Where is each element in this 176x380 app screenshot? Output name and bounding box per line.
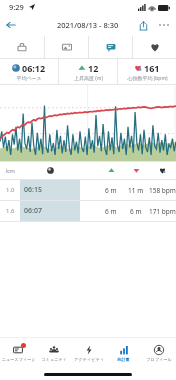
button[interactable]: プロフィール	[141, 338, 176, 368]
button[interactable]: アクティビティ	[71, 338, 106, 368]
staticText: 171 bpm	[149, 207, 176, 216]
staticText: 6 m	[105, 186, 117, 195]
button[interactable]: 161	[118, 59, 176, 84]
staticText: コミュニティ	[41, 357, 67, 362]
button[interactable]: Activity type	[0, 36, 44, 58]
staticText: ニュースフィード	[1, 357, 36, 362]
staticText: 心拍数平均 (bpm)	[127, 75, 168, 82]
staticText: 2021/08/13 - 8:30	[57, 20, 119, 30]
staticText: 統計量	[117, 357, 130, 362]
staticText: 1.6	[6, 207, 15, 215]
button[interactable]: 12	[59, 59, 117, 84]
staticText: 06:07	[24, 206, 42, 216]
staticText: km	[6, 167, 15, 175]
button[interactable]: More options	[154, 14, 174, 36]
staticText: 上昇高度 (m)	[74, 75, 103, 82]
button[interactable]: Back	[0, 14, 22, 36]
staticText: 12	[88, 62, 99, 74]
button[interactable]	[0, 85, 176, 161]
button[interactable]: 1.0	[0, 180, 176, 200]
staticText: 06:12	[22, 62, 46, 74]
button[interactable]: 06:12	[0, 59, 58, 84]
button[interactable]: Like	[133, 36, 176, 58]
button[interactable]: 統計量	[106, 338, 141, 368]
staticText: 1.0	[6, 186, 15, 194]
staticText: 6 m	[105, 207, 117, 216]
staticText: 11 m	[128, 186, 144, 195]
button[interactable]: Comments	[89, 36, 132, 58]
staticText: 161	[144, 62, 160, 74]
staticText: 平均ペース	[16, 75, 42, 81]
staticText: 158 bpm	[149, 186, 176, 195]
staticText: アクティビティ	[74, 357, 104, 362]
staticText: プロフィール	[146, 357, 172, 362]
staticText: 6 m	[130, 207, 142, 216]
button[interactable]: 1.6	[0, 201, 176, 221]
staticText: 9:29	[9, 2, 24, 12]
button[interactable]: コミュニティ	[36, 338, 71, 368]
staticText: 06:15	[24, 185, 42, 195]
button[interactable]: ニュースフィード	[0, 338, 36, 368]
button[interactable]: Photos	[45, 36, 88, 58]
button[interactable]: Share	[132, 14, 154, 36]
